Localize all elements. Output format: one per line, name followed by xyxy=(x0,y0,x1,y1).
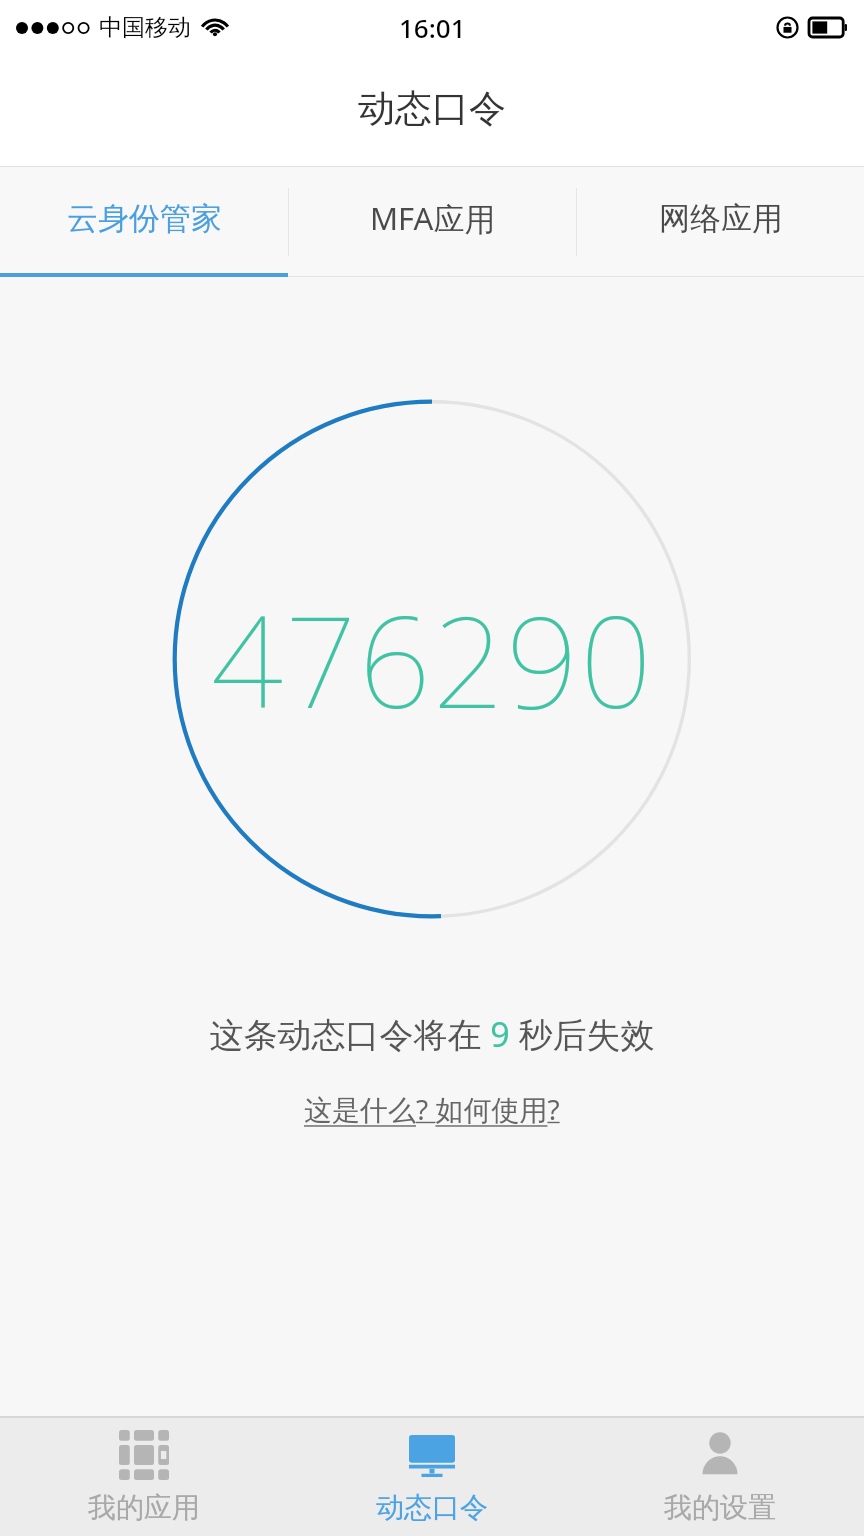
staticText: 476290 xyxy=(211,573,654,745)
staticText: 中国移动 xyxy=(99,13,191,42)
button[interactable]: 我的应用 xyxy=(0,1418,288,1536)
staticText: 我的应用 xyxy=(88,1490,200,1525)
button[interactable]: 云身份管家 xyxy=(0,167,288,277)
staticText: 这条动态口令将在 9 秒后失效 xyxy=(209,1011,655,1057)
staticText: 网络应用 xyxy=(659,199,783,238)
staticText: 16:01 xyxy=(399,10,466,45)
button[interactable]: 动态口令 xyxy=(288,1418,576,1536)
button[interactable]: 这是什么? 如何使用? xyxy=(298,1087,566,1131)
staticText: 我的设置 xyxy=(664,1490,776,1525)
staticText: 云身份管家 xyxy=(67,199,222,238)
button[interactable]: 网络应用 xyxy=(577,167,864,277)
staticText: MFA应用 xyxy=(370,197,496,239)
staticText: 动态口令 xyxy=(376,1490,488,1525)
button[interactable]: 我的设置 xyxy=(576,1418,864,1536)
staticText: 动态口令 xyxy=(358,85,506,132)
staticText: 这是什么? 如何使用? xyxy=(304,1090,560,1128)
button[interactable]: MFA应用 xyxy=(289,167,576,277)
